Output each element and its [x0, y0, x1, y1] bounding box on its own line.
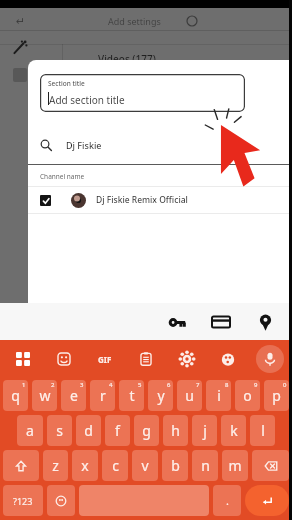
button[interactable]: q [3, 380, 28, 411]
button[interactable]: . [213, 485, 241, 516]
button[interactable]: Backspace [252, 450, 289, 481]
staticText: 2 [51, 381, 55, 389]
button[interactable]: Settings [174, 346, 200, 372]
button[interactable]: r [90, 380, 115, 411]
button[interactable]: w [32, 380, 57, 411]
button[interactable]: Themes [215, 346, 241, 372]
staticText: 6 [167, 381, 171, 389]
staticText: GIF [98, 354, 112, 365]
staticText: Dj Fiskie [66, 139, 102, 151]
staticText: 1 [22, 381, 26, 389]
staticText: Videos (177) [98, 52, 156, 66]
staticText: 9 [254, 381, 258, 389]
button[interactable]: Section title [40, 74, 245, 112]
staticText: 7 [196, 381, 200, 389]
staticText: 3 [80, 381, 84, 389]
staticText: o [243, 386, 252, 405]
button[interactable]: Passwords [160, 305, 194, 339]
staticText: i [217, 386, 221, 405]
staticText: 0 [283, 381, 287, 389]
staticText: 4 [109, 381, 113, 389]
button[interactable]: j [192, 415, 217, 446]
staticText: y [157, 386, 165, 405]
button[interactable]: v [132, 450, 158, 481]
staticText: m [228, 456, 242, 475]
button[interactable]: t [119, 380, 144, 411]
button[interactable]: e [61, 380, 86, 411]
button[interactable]: Open features menu [10, 346, 36, 372]
button[interactable]: Clipboard [133, 346, 159, 372]
button[interactable]: h [163, 415, 188, 446]
staticText: x [81, 456, 89, 475]
staticText: d [84, 421, 93, 440]
button[interactable]: i [206, 380, 231, 411]
button[interactable]: u [177, 380, 202, 411]
staticText: h [171, 421, 180, 440]
staticText: p [272, 386, 281, 405]
button[interactable]: c [102, 450, 128, 481]
staticText: k [230, 421, 238, 440]
staticText: 5 [138, 381, 142, 389]
button[interactable]: Shift [3, 450, 39, 481]
staticText: w [39, 386, 51, 405]
staticText: t [129, 386, 135, 405]
button[interactable]: y [148, 380, 173, 411]
staticText: l [261, 421, 265, 440]
staticText: Dj Fiskie Remix Official [96, 194, 188, 206]
button[interactable]: k [221, 415, 246, 446]
button[interactable]: Dj Fiskie [28, 128, 292, 162]
staticText: g [142, 421, 151, 440]
staticText: b [171, 456, 180, 475]
staticText: r [100, 386, 106, 405]
button[interactable]: a [17, 415, 43, 446]
staticText: ?123 [13, 495, 33, 507]
button[interactable]: Enter [245, 485, 289, 516]
button[interactable]: GIF [92, 346, 118, 372]
button[interactable]: z [43, 450, 68, 481]
button[interactable]: Emoji key [47, 485, 75, 516]
button[interactable]: Payment methods [204, 305, 238, 339]
staticText: ↵ [16, 15, 26, 28]
staticText: f [115, 421, 120, 440]
button[interactable]: g [134, 415, 159, 446]
staticText: z [52, 456, 59, 475]
button[interactable]: Emoji [51, 346, 77, 372]
staticText: u [185, 386, 194, 405]
button[interactable]: n [192, 450, 218, 481]
staticText: c [112, 456, 119, 475]
button[interactable]: x [72, 450, 98, 481]
button[interactable]: b [162, 450, 188, 481]
button[interactable]: Voice input [256, 345, 284, 373]
button[interactable]: f [105, 415, 130, 446]
button[interactable]: ?123 [3, 485, 43, 516]
button[interactable]: p [264, 380, 289, 411]
staticText: Section title [48, 79, 85, 88]
staticText: Channel name [40, 172, 85, 181]
staticText: . [226, 493, 229, 508]
button[interactable]: d [76, 415, 101, 446]
staticText: Add settings [108, 15, 161, 27]
staticText: s [56, 421, 63, 440]
staticText: q [11, 386, 20, 405]
staticText: Add section title [49, 93, 125, 107]
staticText: v [141, 456, 149, 475]
button[interactable]: l [250, 415, 275, 446]
staticText: a [26, 421, 34, 440]
button[interactable]: Dj Fiskie Remix Official [28, 187, 292, 213]
button[interactable]: o [235, 380, 260, 411]
button[interactable]: Space [79, 485, 209, 516]
staticText: n [201, 456, 210, 475]
button[interactable]: s [47, 415, 72, 446]
staticText: 8 [225, 381, 229, 389]
button[interactable]: Addresses [248, 305, 282, 339]
staticText: j [203, 421, 207, 440]
staticText: e [70, 386, 78, 405]
button[interactable]: m [222, 450, 248, 481]
